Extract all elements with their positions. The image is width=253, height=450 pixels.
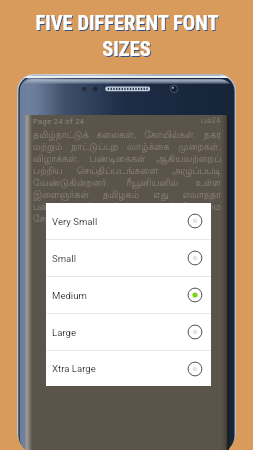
staticText: Page 24 of 24: [33, 117, 85, 126]
button[interactable]: Medium: [46, 277, 211, 313]
button[interactable]: Very Small: [46, 203, 211, 239]
staticText: தமிழ்நாட்டுக் கலைகள், கோயில்கள், நகர மற்…: [33, 130, 221, 226]
staticText: SIZES: [103, 38, 152, 62]
staticText: FIVE DIFFERENT FONT: [36, 12, 220, 36]
staticText: Very Small: [52, 216, 98, 227]
staticText: SIZES: [102, 37, 151, 61]
button[interactable]: Small: [46, 240, 211, 276]
staticText: FIVE DIFFERENT FONT: [35, 11, 219, 35]
button[interactable]: Large: [46, 314, 211, 350]
staticText: Medium: [52, 290, 87, 301]
staticText: Small: [52, 253, 76, 264]
staticText: பக்24: [201, 117, 221, 126]
staticText: Large: [52, 327, 77, 338]
staticText: Xtra Large: [52, 363, 96, 374]
button[interactable]: Xtra Large: [46, 351, 211, 386]
